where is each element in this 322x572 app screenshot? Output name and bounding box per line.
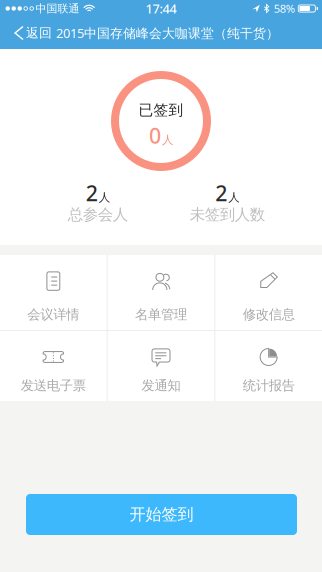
staticText: 名单管理: [135, 306, 187, 323]
button[interactable]: 统计报告: [215, 331, 322, 401]
staticText: 17:44: [145, 0, 176, 17]
staticText: 返回: [26, 25, 52, 41]
button[interactable]: 返回: [0, 17, 56, 49]
staticText: 2015中国存储峰会大咖课堂（纯干货）: [56, 24, 279, 42]
staticText: 58%: [274, 1, 295, 16]
staticText: 发通知: [141, 377, 180, 394]
button[interactable]: 会议详情: [0, 255, 107, 330]
staticText: 0: [149, 121, 161, 150]
staticText: 会议详情: [27, 306, 79, 323]
button[interactable]: 发送电子票: [0, 331, 107, 401]
staticText: 2: [215, 178, 227, 208]
button[interactable]: 名单管理: [108, 255, 214, 330]
staticText: 人: [162, 133, 173, 147]
staticText: 修改信息: [243, 306, 295, 323]
staticText: 已签到: [138, 101, 183, 119]
staticText: 总参会人: [68, 205, 128, 224]
staticText: 人: [228, 190, 239, 205]
button[interactable]: 发通知: [108, 331, 214, 401]
staticText: 未签到人数: [190, 205, 265, 224]
staticText: 开始签到: [129, 504, 193, 525]
staticText: 2: [86, 178, 98, 208]
staticText: 中国联通: [35, 2, 79, 15]
staticText: 统计报告: [243, 377, 295, 394]
staticText: 发送电子票: [21, 377, 86, 394]
button[interactable]: 修改信息: [215, 255, 322, 330]
button[interactable]: 开始签到: [26, 494, 297, 535]
staticText: 人: [99, 190, 110, 205]
